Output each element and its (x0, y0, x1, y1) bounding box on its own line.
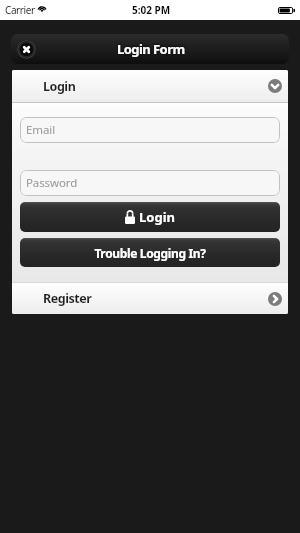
button[interactable]: Register (12, 283, 288, 314)
staticText: Carrier (5, 3, 35, 17)
staticText: Email (26, 122, 56, 138)
staticText: 5:02 PM (132, 3, 171, 17)
button[interactable]: Login (12, 70, 288, 102)
staticText: Register (43, 290, 92, 307)
button[interactable]: Email (20, 117, 280, 143)
staticText: Login Form (117, 40, 185, 58)
staticText: Login (43, 78, 76, 95)
button[interactable]: Password (20, 170, 280, 196)
button[interactable]: Login (20, 202, 280, 232)
staticText: Password (26, 175, 78, 191)
button[interactable]: Close (17, 40, 36, 59)
staticText: Trouble Logging In? (94, 245, 206, 261)
staticText: Login (139, 208, 175, 226)
button[interactable]: Trouble Logging In? (20, 238, 280, 267)
